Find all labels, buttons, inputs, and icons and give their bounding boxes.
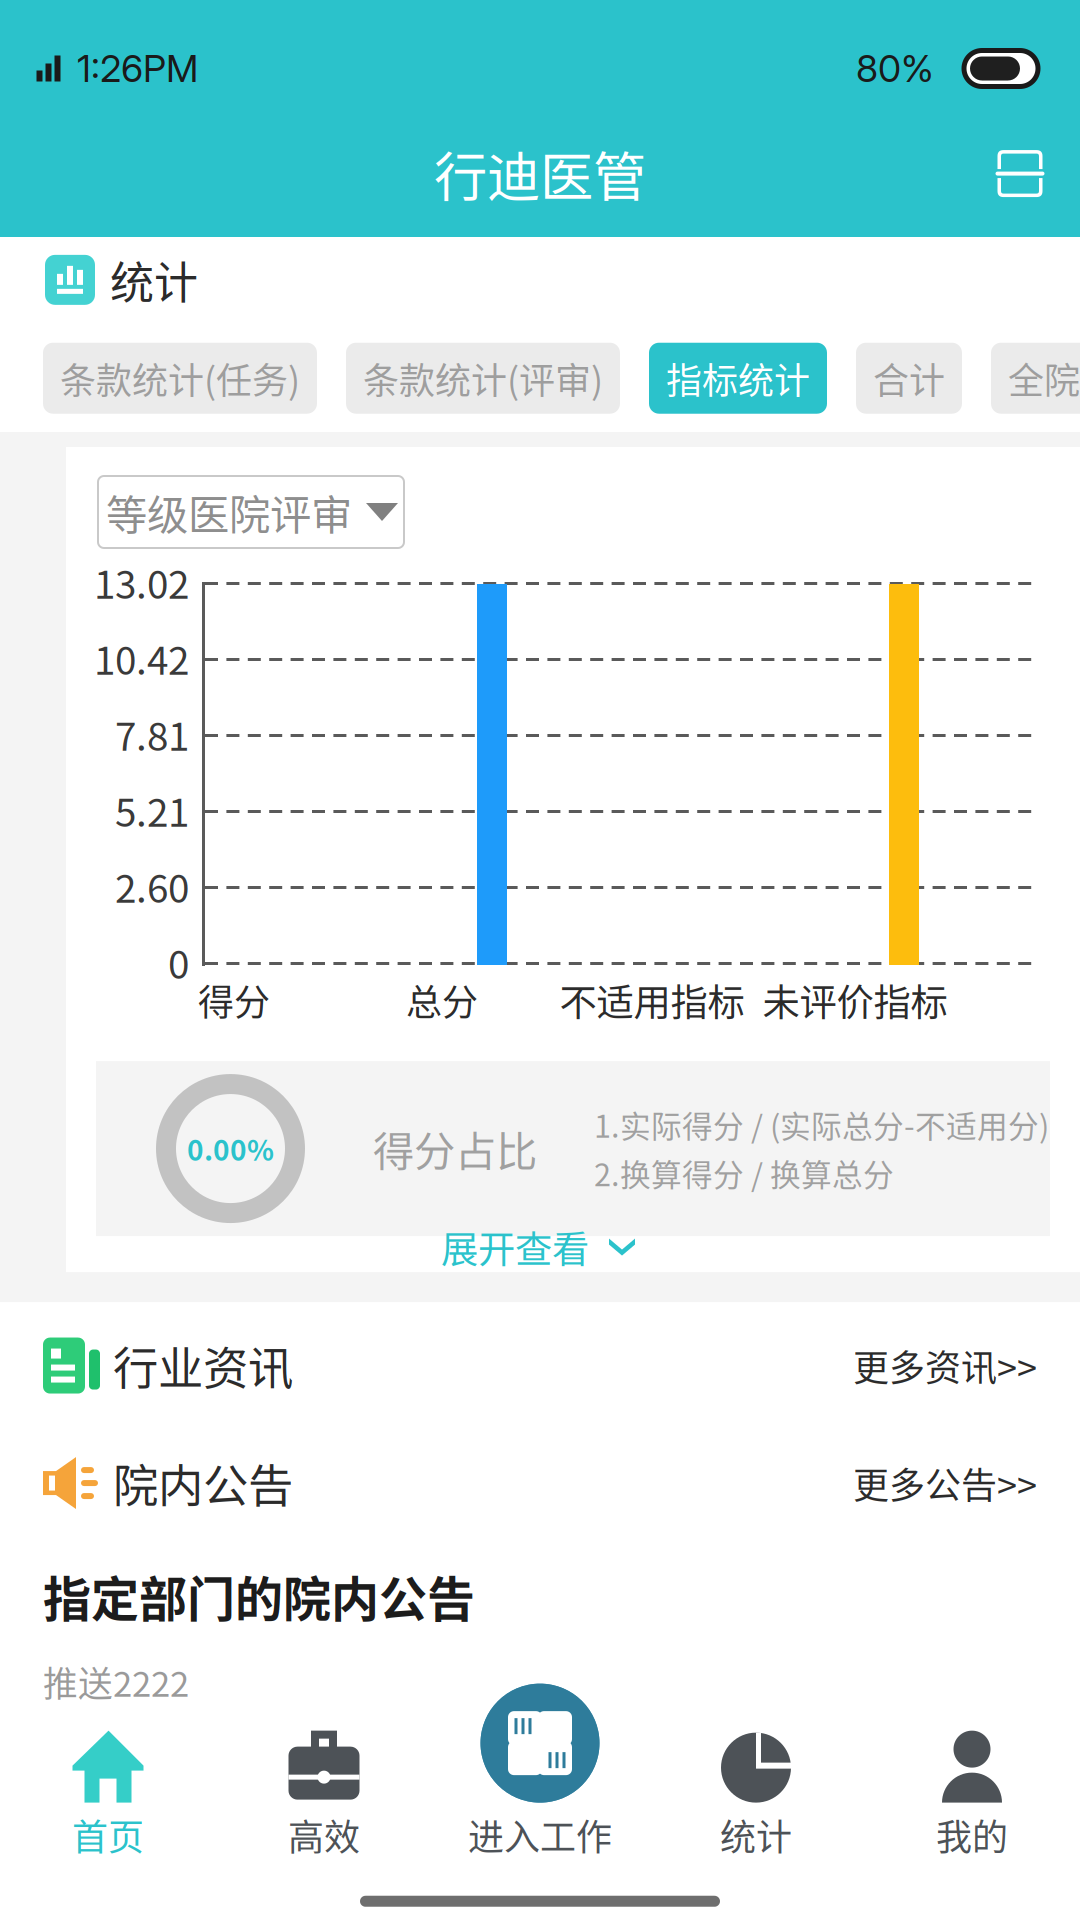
staticText: 2.60	[115, 858, 189, 914]
staticText: 0.00%	[187, 1128, 274, 1169]
button[interactable]: 院内公告	[0, 1427, 1080, 1539]
button[interactable]: 合计	[856, 343, 962, 414]
staticText: 1:26PM	[77, 46, 198, 91]
staticText: 7.81	[115, 706, 189, 762]
button[interactable]: 条款统计(评审)	[346, 343, 620, 414]
button[interactable]: 进入工作	[432, 1707, 648, 1889]
staticText: 院内公告	[113, 1450, 293, 1516]
staticText: 首页	[72, 1809, 144, 1861]
staticText: 指定部门的院内公告	[43, 1561, 475, 1631]
staticText: 推送2222	[43, 1657, 189, 1707]
staticText: 2.换算得分 / 换算总分	[594, 1151, 894, 1195]
staticText: 更多公告>>	[853, 1457, 1037, 1509]
staticText: 条款统计(评审)	[363, 352, 603, 404]
staticText: 我的	[936, 1809, 1008, 1861]
staticText: 合计	[873, 352, 945, 404]
staticText: 高效	[288, 1809, 360, 1861]
staticText: 统计	[110, 248, 198, 312]
staticText: 1.实际得分 / (实际总分-不适用分)	[594, 1102, 1049, 1147]
staticText: 指标统计	[666, 352, 810, 404]
button[interactable]: 全院	[991, 343, 1080, 414]
staticText: 13.02	[94, 554, 189, 610]
staticText: 行业资讯	[113, 1333, 293, 1398]
staticText: 5.21	[115, 782, 189, 838]
button[interactable]: 等级医院评审	[66, 447, 1080, 548]
staticText: 展开查看	[441, 1220, 589, 1274]
button[interactable]: 条款统计(任务)	[43, 343, 317, 414]
staticText: 进入工作	[468, 1809, 612, 1861]
staticText: 10.42	[94, 630, 189, 686]
staticText: 等级医院评审	[106, 482, 352, 542]
staticText: 更多资讯>>	[853, 1339, 1037, 1392]
staticText: 80%	[856, 46, 934, 91]
button[interactable]: 我的	[864, 1707, 1080, 1889]
staticText: 得分	[198, 974, 270, 1026]
staticText: 未评价指标	[762, 973, 947, 1027]
staticText: 行迪医管	[434, 135, 646, 212]
button[interactable]: 行业资讯	[0, 1302, 1080, 1429]
button[interactable]: 扫一扫	[965, 119, 1080, 229]
staticText: 不适用指标	[559, 973, 744, 1027]
staticText: 全院	[1008, 352, 1080, 404]
staticText: 0	[168, 934, 189, 990]
button[interactable]: 统计	[648, 1707, 864, 1889]
button[interactable]: 高效	[216, 1707, 432, 1889]
button[interactable]: 展开查看	[66, 1236, 1045, 1272]
staticText: 总分	[406, 974, 478, 1026]
staticText: 统计	[720, 1809, 792, 1861]
staticText: 得分占比	[373, 1119, 537, 1178]
button[interactable]: 指标统计	[649, 343, 827, 414]
button[interactable]: 首页	[0, 1707, 216, 1889]
staticText: 条款统计(任务)	[60, 352, 300, 404]
